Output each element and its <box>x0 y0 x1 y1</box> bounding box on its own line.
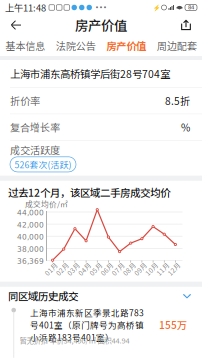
staticText: 房产价值 <box>106 38 146 53</box>
button[interactable]: 基本信息 <box>0 35 50 56</box>
staticText: 44,000 <box>17 208 44 217</box>
button[interactable]: 周边配套 <box>151 35 202 56</box>
staticText: 8.5折 <box>165 93 190 108</box>
staticText: 08月 <box>122 264 137 274</box>
staticText: 折价率 <box>10 93 40 108</box>
button[interactable]: Back <box>3 15 29 34</box>
staticText: 38,000 <box>17 245 44 253</box>
staticText: ••• <box>95 4 107 11</box>
staticText: 同区域历史成交 <box>8 288 78 303</box>
staticText: % <box>181 120 190 135</box>
button[interactable]: 法院公告 <box>50 35 101 56</box>
staticText: 10月 <box>144 264 159 274</box>
staticText: 01月 <box>44 264 59 274</box>
staticText: 11月 <box>155 264 170 274</box>
staticText: 暂无折扣 单价34,490/㎡ 面积44.94 <box>19 335 129 346</box>
staticText: ⚡ <box>152 4 159 11</box>
staticText: 房产价值 <box>75 15 127 35</box>
staticText: 05月 <box>88 264 103 274</box>
staticText: 基本信息 <box>5 38 45 53</box>
staticText: 上午11:48 <box>5 1 46 14</box>
staticText: 03月 <box>66 264 81 274</box>
staticText: 04月 <box>77 264 92 274</box>
staticText: 过去12个月，该区域二手房成交均价 <box>8 185 170 200</box>
staticText: 上海市浦东新区季景北路783号401室（原门牌号为高桥镇小浜路183号401室） <box>30 306 144 343</box>
staticText: 复合增长率 <box>10 120 60 135</box>
staticText: 02月 <box>55 264 70 274</box>
staticText: 上海市浦东高桥镇学后街28号704室 <box>10 66 170 81</box>
staticText: 36,369 <box>17 257 44 265</box>
staticText: 42,000 <box>17 220 44 229</box>
staticText: 成交均价/㎡ <box>25 198 68 209</box>
button[interactable]: 房产价值 <box>101 35 151 56</box>
staticText: 09月 <box>133 264 148 274</box>
staticText: 成交活跃度 <box>10 142 60 157</box>
staticText: 526套次(活跃) <box>14 158 71 171</box>
staticText: 07月 <box>111 264 126 274</box>
staticText: 周边配套 <box>157 38 197 53</box>
staticText: 84 <box>188 4 194 11</box>
staticText: 06月 <box>99 264 114 274</box>
staticText: 法院公告 <box>56 38 96 53</box>
button[interactable]: 同区域历史成交 <box>0 287 202 305</box>
staticText: 155万 <box>159 317 187 332</box>
button[interactable]: 526套次(活跃) <box>10 157 76 172</box>
staticText: 40,000 <box>17 233 44 241</box>
button[interactable]: Share <box>173 15 199 34</box>
staticText: 12月 <box>166 264 181 274</box>
